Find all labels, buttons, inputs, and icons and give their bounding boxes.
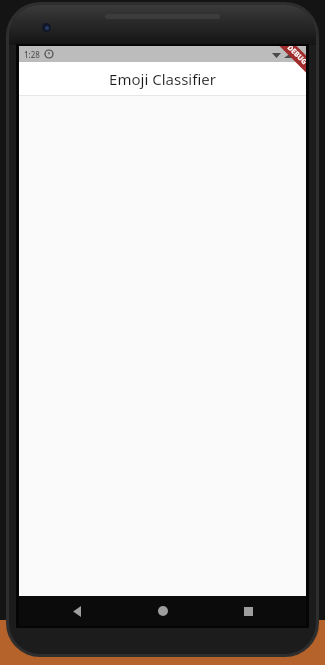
staticText: Emoji Classifier: [109, 69, 216, 89]
button[interactable]: Back: [49, 596, 105, 626]
button[interactable]: Recent apps: [220, 596, 276, 626]
staticText: DEBUG: [285, 46, 306, 68]
button[interactable]: Home: [135, 596, 191, 626]
staticText: 1:28: [24, 49, 40, 60]
